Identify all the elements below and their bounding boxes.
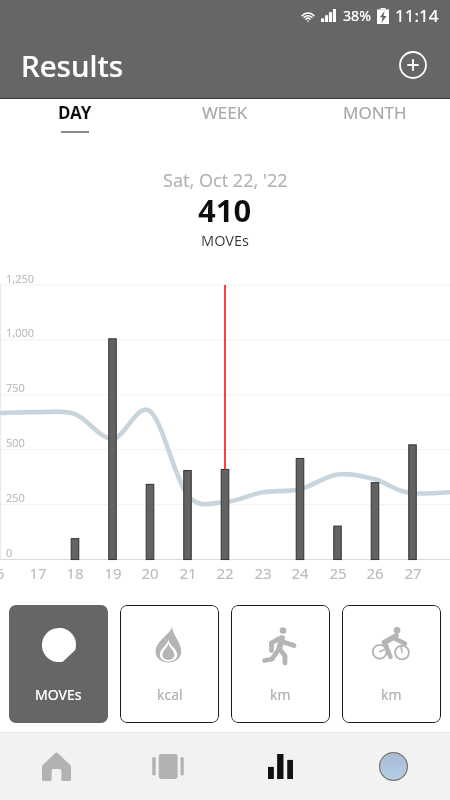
staticText: 1,000 (6, 325, 35, 340)
staticText: DAY (58, 101, 92, 124)
staticText: 22 (214, 563, 236, 583)
staticText: 0 (6, 545, 13, 560)
button[interactable]: km (342, 605, 441, 723)
staticText: MOVEs (201, 230, 250, 250)
button[interactable]: km (231, 605, 330, 723)
staticText: 38% (343, 6, 372, 25)
button[interactable]: kcal (120, 605, 219, 723)
staticText: 19 (102, 563, 124, 583)
button[interactable]: DAY (0, 99, 150, 139)
staticText: MOVEs (35, 685, 82, 704)
staticText: 25 (327, 563, 349, 583)
button[interactable]: Home (0, 732, 112, 800)
staticText: 11:14 (395, 4, 439, 27)
staticText: WEEK (202, 101, 248, 124)
staticText: MONTH (343, 101, 407, 124)
staticText: 6 (0, 563, 11, 583)
button[interactable]: MOVEs (9, 605, 108, 723)
button[interactable]: MONTH (300, 99, 450, 139)
button[interactable]: Cards (112, 732, 224, 800)
staticText: kcal (157, 685, 183, 704)
button[interactable]: Results (224, 732, 337, 800)
staticText: 26 (364, 563, 386, 583)
staticText: Sat, Oct 22, '22 (163, 168, 288, 193)
staticText: 27 (402, 563, 424, 583)
staticText: 20 (139, 563, 161, 583)
staticText: 21 (177, 563, 199, 583)
staticText: 410 (198, 189, 252, 231)
staticText: 500 (6, 435, 25, 450)
staticText: 750 (6, 380, 25, 395)
staticText: 23 (252, 563, 274, 583)
button[interactable]: Add (399, 51, 427, 79)
button[interactable]: WEEK (150, 99, 300, 139)
staticText: Results (21, 45, 124, 85)
staticText: 250 (6, 490, 25, 505)
staticText: 17 (27, 563, 49, 583)
staticText: 1,250 (6, 271, 35, 286)
staticText: km (381, 685, 402, 704)
staticText: 24 (289, 563, 311, 583)
staticText: 18 (64, 563, 86, 583)
staticText: km (270, 685, 291, 704)
button[interactable]: Profile (337, 732, 450, 800)
